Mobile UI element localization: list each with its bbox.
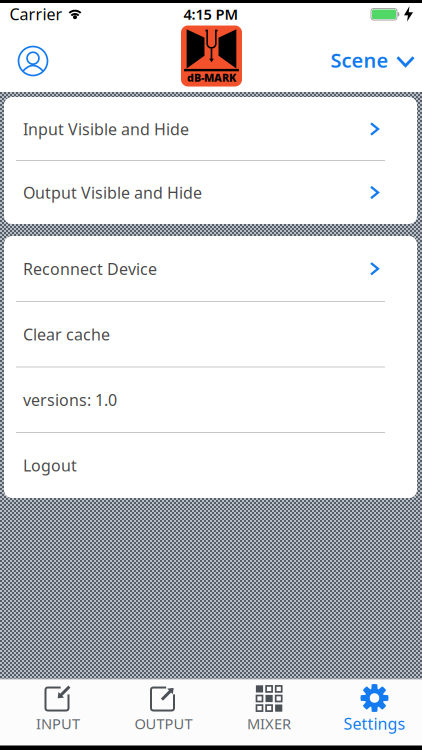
button[interactable]: Scene	[330, 47, 413, 73]
staticText: dB-MARK	[187, 70, 236, 85]
staticText: Carrier	[9, 3, 62, 25]
staticText: versions: 1.0	[23, 389, 117, 410]
button[interactable]: Profile	[16, 44, 50, 78]
staticText: Logout	[23, 455, 77, 476]
button[interactable]: Settings	[322, 679, 422, 745]
staticText: 4:15 PM	[183, 4, 238, 24]
button[interactable]: OUTPUT	[111, 679, 215, 745]
staticText: Output Visible and Hide	[23, 182, 202, 203]
button[interactable]: MIXER	[217, 679, 321, 745]
staticText: INPUT	[36, 714, 80, 733]
staticText: OUTPUT	[134, 714, 192, 733]
staticText: Clear cache	[23, 324, 110, 345]
staticText: Settings	[343, 713, 405, 734]
staticText: Input Visible and Hide	[23, 118, 189, 140]
button[interactable]: Logout	[4, 433, 417, 498]
button[interactable]: Clear cache	[4, 302, 417, 367]
button[interactable]: Input Visible and Hide	[4, 97, 417, 160]
staticText: Scene	[330, 47, 388, 73]
staticText: MIXER	[247, 714, 291, 733]
button[interactable]: Reconnect Device	[4, 236, 417, 301]
button[interactable]: INPUT	[6, 679, 110, 745]
staticText: Reconnect Device	[23, 258, 157, 279]
button[interactable]: Output Visible and Hide	[4, 161, 417, 224]
